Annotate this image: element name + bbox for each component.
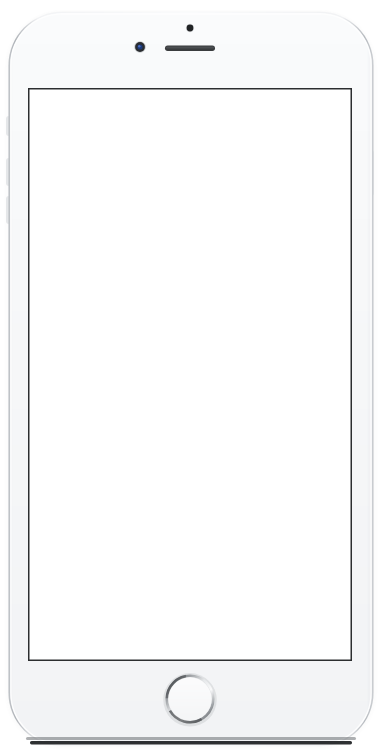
button[interactable]: Home <box>165 674 215 724</box>
button[interactable]: Mute switch <box>4 116 18 136</box>
button[interactable]: Power <box>362 150 376 196</box>
button[interactable]: Volume up <box>4 158 18 186</box>
button[interactable]: Volume down <box>4 196 18 224</box>
button[interactable]: White smartphone device mockup with blan… <box>0 0 380 750</box>
